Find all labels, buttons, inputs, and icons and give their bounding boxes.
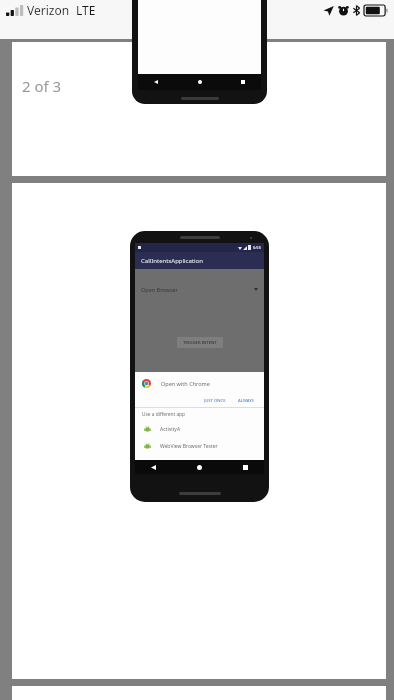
button[interactable]: Open Browser — [135, 286, 264, 293]
staticText: ALWAYS — [238, 398, 254, 404]
button[interactable]: JUST ONCE — [201, 396, 229, 406]
button[interactable]: WebView Browser Tester — [135, 438, 264, 455]
staticText: ksuweb.kennesaw.edu — [133, 22, 261, 38]
button[interactable]: 6:55 — [12, 183, 386, 679]
staticText: WebView Browser Tester — [160, 443, 218, 450]
staticText: CallIntentsApplication — [141, 257, 203, 265]
button[interactable]: ActivityA — [135, 421, 264, 438]
button[interactable]: ALWAYS — [235, 396, 257, 406]
button[interactable]: Back — [151, 465, 156, 470]
staticText: JUST ONCE — [204, 398, 226, 404]
staticText: 6:55 — [253, 245, 261, 250]
button[interactable]: Back — [154, 80, 158, 84]
button[interactable]: TRIGGER INTENT — [177, 337, 223, 348]
staticText: Use a different app — [142, 411, 186, 418]
button[interactable]: 2 of 3 — [12, 42, 386, 176]
staticText: Open Browser — [141, 286, 178, 293]
button[interactable]: Home — [198, 80, 202, 84]
staticText: Verizon — [27, 2, 70, 18]
button[interactable]: Open with Chrome — [135, 372, 264, 394]
button[interactable]: ksuweb.kennesaw.edu — [0, 20, 394, 39]
staticText: Open with Chrome — [161, 380, 210, 387]
staticText: ActivityA — [160, 426, 181, 433]
staticText: TRIGGER INTENT — [183, 340, 217, 346]
staticText: LTE — [76, 2, 96, 18]
button[interactable]: Home — [197, 465, 202, 470]
staticText: 2 of 3 — [22, 76, 62, 96]
